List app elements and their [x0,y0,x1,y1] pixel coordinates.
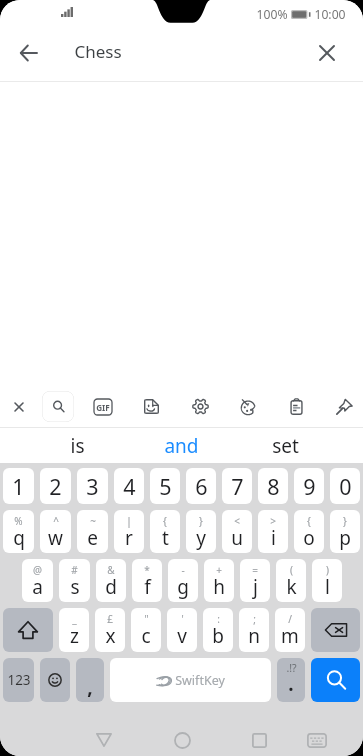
button[interactable]: £ [95,608,125,652]
button[interactable]: Shift [3,608,53,652]
button[interactable]: 8 [258,468,288,504]
staticText: 3 [86,472,99,501]
staticText: 7 [231,472,244,501]
button[interactable]: ) [312,559,342,602]
staticText: e [87,525,98,551]
button[interactable]: 1 [3,468,34,504]
button[interactable]: " [131,608,161,652]
button[interactable]: } [330,510,360,553]
button[interactable]: 5 [150,468,180,504]
button[interactable]: , [76,658,104,702]
staticText: " [144,612,149,626]
staticText: t [162,525,169,551]
button[interactable]: Clipboard [277,387,315,426]
button[interactable]: Pin [325,387,363,426]
button[interactable]: Close [307,33,347,73]
button[interactable]: ~ [77,510,108,553]
staticText: f [144,574,151,600]
button[interactable]: Home [160,718,204,756]
button[interactable]: { [150,510,180,553]
button[interactable]: _ [59,608,89,652]
button[interactable]: ( [276,559,306,602]
button[interactable]: : [203,608,233,652]
staticText: * [144,563,150,577]
button[interactable]: 3 [77,468,108,504]
staticText: - [181,563,185,577]
button[interactable]: + [204,559,234,602]
button[interactable]: @ [22,559,53,602]
staticText: . [288,671,294,697]
staticText: d [105,574,117,600]
button[interactable]: Stickers [132,387,170,426]
staticText: c [141,623,151,649]
button[interactable]: GIF [84,387,122,426]
button[interactable]: 4 [114,468,144,504]
staticText: ' [181,612,184,626]
button[interactable]: = [240,559,270,602]
button[interactable]: 6 [186,468,216,504]
button[interactable]: Search [42,391,74,422]
staticText: 9 [303,472,316,501]
button[interactable]: 2 [40,468,71,504]
button[interactable]: ; [239,608,269,652]
staticText: ( [290,563,293,577]
staticText: ~ [90,514,96,528]
button[interactable]: & [96,559,126,602]
button[interactable]: / [275,608,305,652]
staticText: ) [326,563,329,577]
staticText: p [339,525,351,551]
button[interactable]: Back [82,718,126,756]
button[interactable]: Back [8,33,48,73]
button[interactable]: Settings [181,387,219,426]
button[interactable]: # [59,559,90,602]
staticText: s [70,574,80,600]
staticText: b [212,623,224,649]
button[interactable]: Recents [237,718,281,756]
button[interactable]: } [186,510,216,553]
button[interactable]: 7 [222,468,252,504]
staticText: / [288,612,292,626]
staticText: 100% [256,6,288,23]
staticText: { [307,514,311,528]
button[interactable]: * [132,559,162,602]
staticText: is [70,433,85,459]
button[interactable]: | [114,510,144,553]
staticText: 1 [12,472,25,501]
staticText: % [14,514,23,528]
button[interactable]: .!? [277,658,305,702]
staticText: z [70,623,79,649]
button[interactable]: Backspace [311,608,360,652]
button[interactable]: Close keyboard [0,387,37,426]
staticText: } [343,514,347,528]
staticText: 4 [123,472,136,501]
button[interactable]: Emoji [40,658,70,702]
button[interactable]: > [258,510,288,553]
button[interactable]: ' [167,608,197,652]
button[interactable]: % [3,510,34,553]
staticText: r [125,525,133,551]
staticText: h [213,574,225,600]
staticText: .!? [286,661,297,675]
button[interactable]: Themes [229,387,267,426]
button[interactable]: set [233,428,337,463]
staticText: l [325,574,330,600]
button[interactable]: < [222,510,252,553]
staticText: q [13,525,25,551]
button[interactable]: Hide keyboard [295,718,339,756]
button[interactable]: 123 [3,658,34,702]
button[interactable]: ^ [40,510,71,553]
button[interactable]: Space [110,658,271,702]
staticText: 10:00 [314,6,346,23]
button[interactable]: 0 [330,468,360,504]
staticText: @ [33,563,42,577]
button[interactable]: - [168,559,198,602]
button[interactable]: is [26,428,129,463]
staticText: SwiftKey [175,672,225,689]
staticText: , [87,674,93,700]
button[interactable]: { [294,510,324,553]
staticText: 0 [339,472,352,501]
button[interactable]: and [129,428,233,463]
staticText: # [71,563,78,577]
button[interactable]: 9 [294,468,324,504]
button[interactable]: Search [311,658,360,702]
